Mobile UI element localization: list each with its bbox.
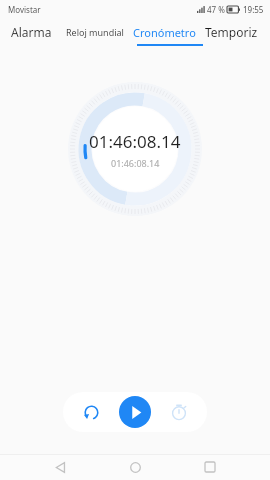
button[interactable]: Cronómetro [132,21,197,44]
staticText: 01:46:08.14 [89,130,181,153]
button[interactable]: Restablecer [76,397,106,427]
button[interactable]: Reloj mundial [65,22,125,42]
button[interactable]: Alarma [10,20,53,44]
button[interactable]: Iniciar [119,396,151,428]
button[interactable]: Atrás [45,454,75,480]
button[interactable]: Inicio [120,454,150,480]
staticText: 47 % [207,4,225,15]
staticText: Alarma [11,24,52,40]
button[interactable]: Recientes [195,454,225,480]
button[interactable]: Vuelta [164,397,194,427]
staticText: Reloj mundial [66,26,124,38]
staticText: Temporiz [205,24,258,40]
staticText: 19:55 [243,4,264,15]
staticText: Movistar [8,4,41,15]
staticText: Cronómetro [133,25,196,40]
staticText: 01:46:08.14 [111,157,160,169]
button[interactable]: Temporiz [204,20,259,44]
